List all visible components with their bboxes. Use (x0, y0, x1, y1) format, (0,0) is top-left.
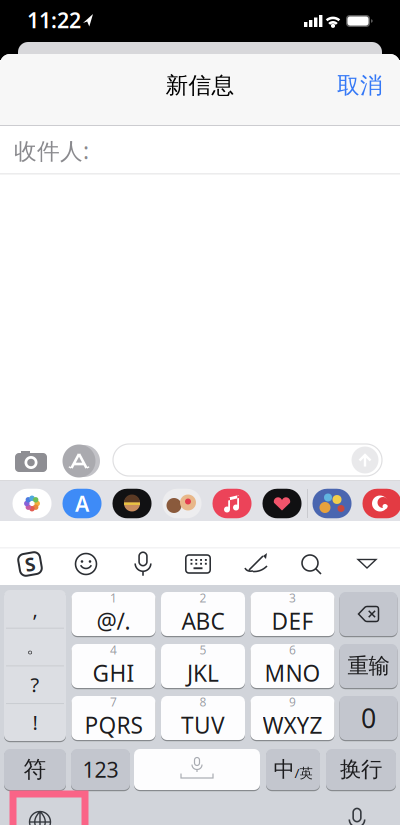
staticText: 9 (289, 694, 296, 710)
button[interactable]: Send (351, 446, 378, 473)
button[interactable]: Sticker Pack (312, 489, 351, 518)
staticText: PQRS (84, 710, 142, 740)
staticText: GHI (92, 658, 134, 688)
button[interactable]: Delete (339, 592, 397, 636)
staticText: 11:22 (27, 6, 81, 34)
staticText: ABC (181, 606, 224, 636)
staticText: JKL (187, 658, 219, 688)
staticText: 中 (273, 756, 294, 783)
button[interactable]: More Apps (362, 489, 400, 518)
staticText: 7 (110, 694, 117, 710)
button[interactable]: 8 (161, 696, 245, 740)
staticText: 1 (110, 590, 117, 606)
button[interactable]: 6 (250, 644, 334, 688)
staticText: 6 (289, 642, 296, 658)
button[interactable]: Camera (15, 449, 47, 473)
button[interactable]: Dictation (125, 549, 161, 579)
staticText: 0 (361, 700, 376, 736)
button[interactable]: 4 (71, 644, 155, 688)
staticText: 123 (82, 755, 118, 784)
staticText: DEF (271, 606, 313, 636)
staticText: 符 (23, 756, 46, 783)
button[interactable]: Punctuation (4, 590, 66, 741)
staticText: ? (30, 671, 39, 698)
staticText: 8 (199, 694, 206, 710)
staticText: WXYZ (262, 710, 322, 740)
staticText: /英 (294, 764, 312, 782)
button[interactable]: Hide keyboard (349, 549, 385, 579)
button[interactable]: 换行 (326, 749, 396, 790)
staticText: @/. (96, 606, 130, 636)
staticText: 3 (289, 590, 296, 606)
button[interactable]: 123 (71, 749, 130, 790)
button[interactable]: Animoji (162, 489, 201, 518)
button[interactable]: Emoji (68, 549, 104, 579)
button[interactable]: Space (134, 749, 260, 790)
staticText: 换行 (340, 756, 382, 783)
button[interactable]: Keyboard layout (180, 549, 216, 579)
button[interactable]: Music (212, 489, 251, 518)
button[interactable]: 2 (161, 592, 245, 636)
button[interactable]: 5 (161, 644, 245, 688)
staticText: 重输 (347, 653, 389, 679)
staticText: 新信息 (165, 72, 234, 99)
button[interactable]: Search (293, 549, 329, 579)
staticText: MNO (264, 658, 320, 688)
button[interactable]: 符 (4, 749, 66, 790)
staticText: 收件人: (14, 135, 89, 165)
button[interactable]: iMessage apps (60, 444, 102, 477)
staticText: , (32, 596, 37, 622)
staticText: S (25, 552, 35, 576)
button[interactable]: 重输 (339, 644, 397, 688)
staticText: 取消 (337, 72, 383, 99)
button[interactable]: Photos (12, 489, 51, 518)
button[interactable]: Dictation (344, 807, 370, 825)
staticText: TUV (181, 710, 225, 740)
button[interactable]: Memoji Stickers (112, 489, 151, 518)
button[interactable]: 1 (71, 592, 155, 636)
button[interactable]: 0 (339, 696, 397, 740)
button[interactable]: 取消 (330, 65, 390, 105)
button[interactable]: App Store (62, 489, 101, 518)
button[interactable]: Next keyboard (28, 810, 52, 825)
staticText: ! (32, 709, 37, 735)
staticText: 。 (26, 636, 43, 657)
button[interactable]: Digital Touch (262, 489, 301, 518)
button[interactable]: Sogou (12, 549, 48, 579)
button[interactable]: Handwriting (238, 549, 274, 579)
staticText: A (75, 489, 89, 518)
staticText: 4 (110, 642, 117, 658)
button[interactable]: 3 (250, 592, 334, 636)
button[interactable]: 9 (250, 696, 334, 740)
staticText: 5 (199, 642, 206, 658)
button[interactable]: 7 (71, 696, 155, 740)
staticText: 2 (199, 590, 206, 606)
button[interactable]: 中 (266, 749, 320, 790)
